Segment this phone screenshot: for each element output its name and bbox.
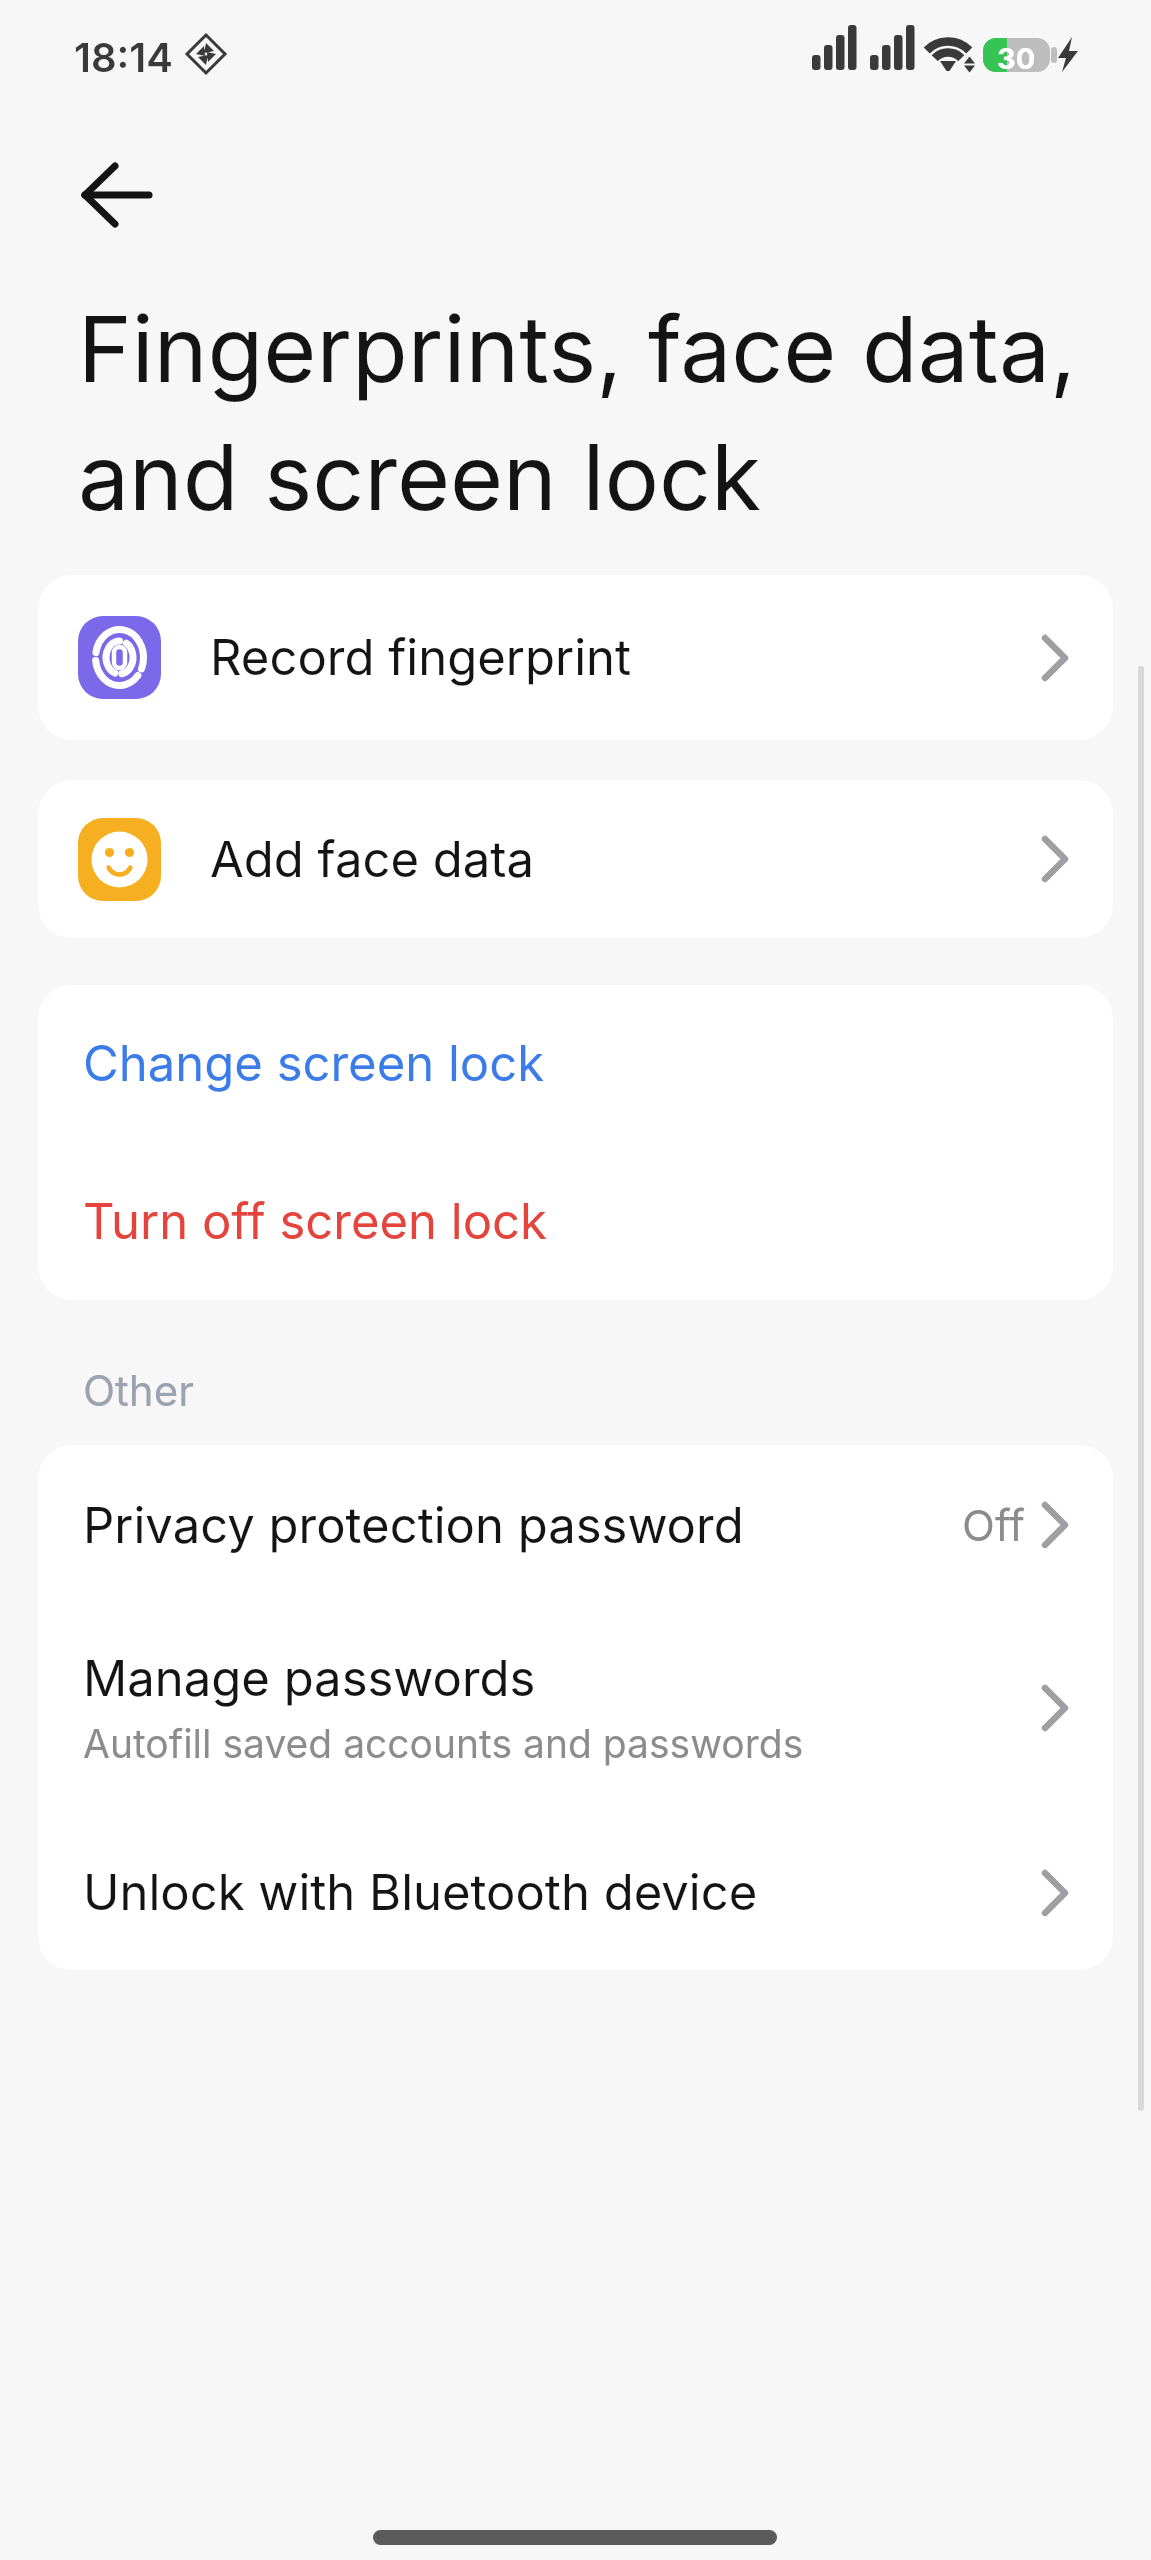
staticText: Other [83, 1365, 194, 1416]
staticText: Change screen lock [83, 1034, 545, 1093]
staticText: Manage passwords [83, 1649, 536, 1708]
button[interactable]: Privacy protection password [38, 1445, 1113, 1605]
button[interactable]: Manage passwords [38, 1610, 1113, 1806]
button[interactable]: Change screen lock [38, 985, 1113, 1142]
staticText: 18:14 [74, 33, 173, 81]
button[interactable] [70, 155, 166, 235]
staticText: Autofill saved accounts and passwords [83, 1720, 804, 1767]
staticText: Turn off screen lock [83, 1192, 547, 1251]
button[interactable]: Turn off screen lock [38, 1142, 1113, 1300]
staticText: 30 [997, 41, 1036, 76]
button[interactable]: Add face data [38, 780, 1113, 938]
button[interactable]: Record fingerprint [38, 575, 1113, 740]
staticText: Unlock with Bluetooth device [83, 1863, 758, 1922]
staticText: Off [962, 1499, 1026, 1551]
staticText: Add face data [210, 830, 535, 889]
staticText: Record fingerprint [210, 628, 632, 687]
button[interactable]: Unlock with Bluetooth device [38, 1808, 1113, 1970]
staticText: Privacy protection password [83, 1496, 744, 1555]
staticText: Fingerprints, face data, and screen lock [78, 294, 1077, 532]
